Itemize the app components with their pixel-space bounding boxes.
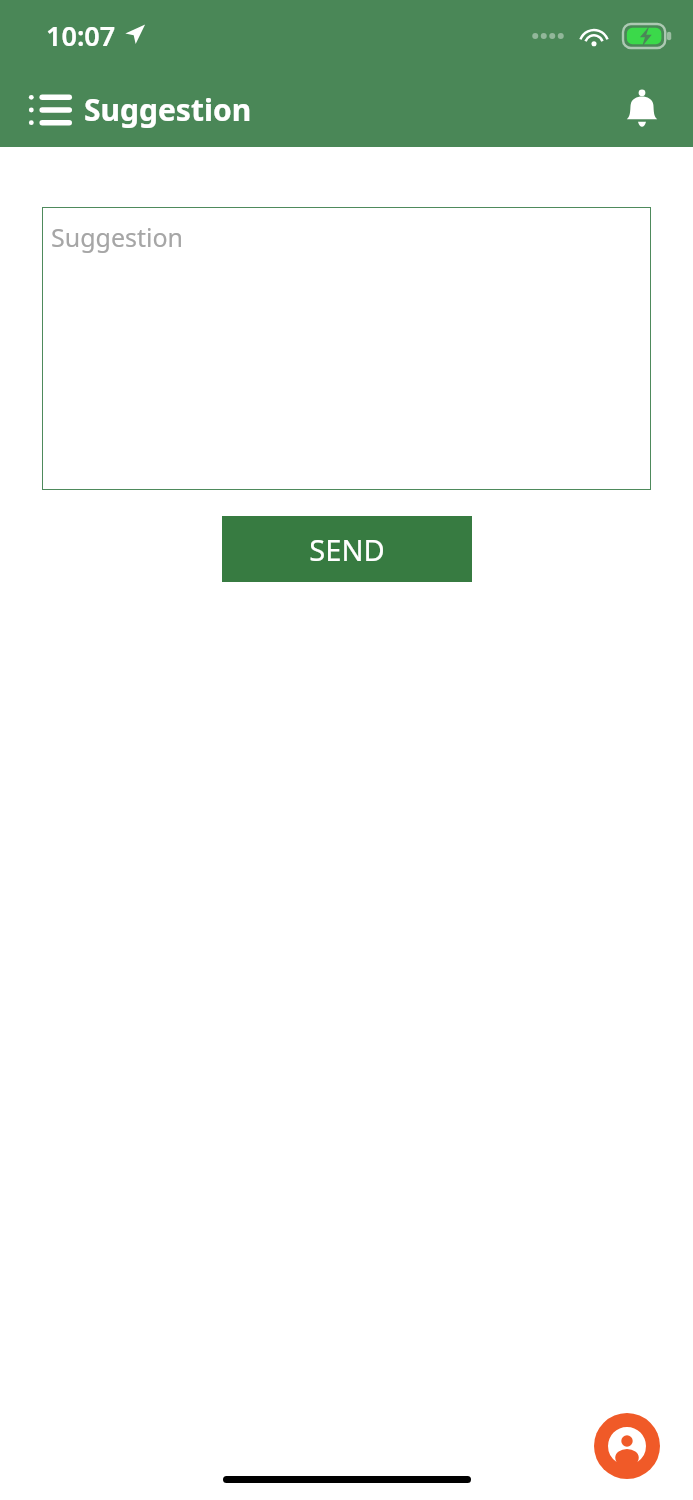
button[interactable]: SEND — [222, 516, 472, 582]
staticText: Suggestion — [84, 89, 252, 130]
button[interactable]: Notifications — [613, 81, 671, 139]
button[interactable]: Menu — [22, 82, 78, 138]
button[interactable]: Account — [594, 1413, 660, 1479]
staticText: Suggestion — [51, 220, 184, 254]
staticText: SEND — [309, 530, 385, 569]
staticText: 10:07 — [46, 17, 116, 54]
button[interactable]: Suggestion — [42, 207, 651, 490]
